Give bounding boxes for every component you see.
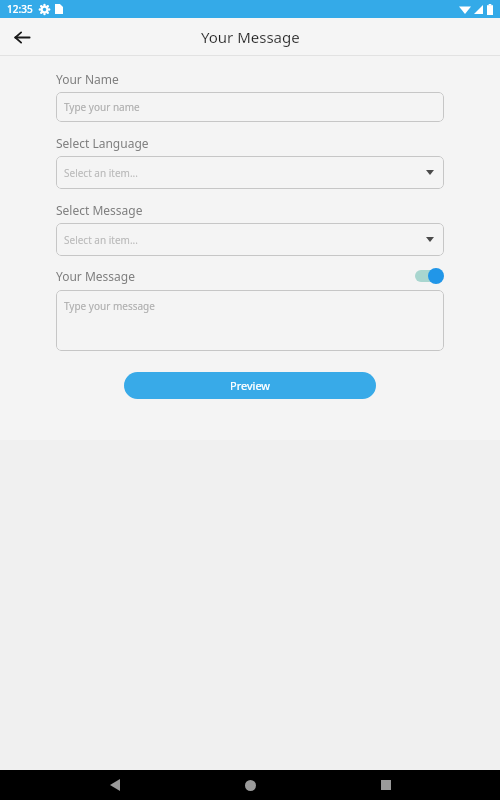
button[interactable]: Type your message — [56, 290, 444, 351]
staticText: Type your message — [64, 299, 155, 313]
button[interactable]: Preview — [124, 372, 376, 399]
staticText: Preview — [230, 378, 271, 393]
button[interactable]: Recents — [365, 770, 407, 800]
button[interactable]: Type your name — [56, 92, 444, 122]
button[interactable]: Back — [8, 23, 36, 51]
button[interactable]: Home — [229, 770, 271, 800]
staticText: Select Language — [56, 135, 149, 151]
staticText: Your Message — [201, 27, 300, 47]
button[interactable]: Back — [94, 770, 136, 800]
button[interactable]: Toggle your message — [414, 267, 444, 285]
staticText: Select Message — [56, 202, 143, 218]
staticText: 12:35 — [7, 2, 33, 16]
staticText: Your Message — [56, 268, 135, 284]
staticText: Your Name — [56, 71, 119, 87]
staticText: Select an item... — [64, 166, 138, 180]
button[interactable]: Select an item... — [56, 223, 444, 256]
button[interactable]: Select an item... — [56, 156, 444, 189]
staticText: Select an item... — [64, 233, 138, 247]
staticText: Type your name — [64, 100, 140, 114]
